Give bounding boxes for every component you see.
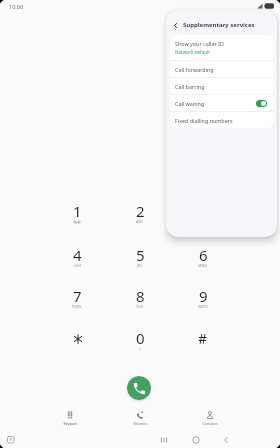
staticText: 9 (199, 286, 208, 306)
button[interactable]: 1 (57, 201, 97, 221)
button[interactable]: Supplementary services (166, 17, 277, 33)
button[interactable]: 0 (120, 328, 160, 348)
button[interactable]: 8 (120, 286, 160, 306)
staticText: Recents (133, 421, 148, 426)
staticText: Call barring (175, 83, 205, 90)
staticText: ABC (136, 219, 144, 224)
staticText: 10:00 (9, 3, 24, 10)
staticText: Keypad (63, 421, 77, 426)
staticText: 7 (73, 286, 82, 306)
staticText: TUV (136, 304, 144, 309)
button[interactable]: Call forwarding (170, 61, 274, 77)
button[interactable]: 4 (57, 245, 97, 265)
button[interactable]: Fixed dialling numbers (170, 112, 274, 128)
staticText: Call forwarding (175, 66, 214, 73)
staticText: Show your caller ID (175, 40, 224, 47)
staticText: JKL (137, 263, 143, 268)
button[interactable]: Keypad (48, 411, 92, 429)
staticText: PQRS (72, 304, 82, 309)
staticText: # (198, 329, 208, 348)
button[interactable]: Call barring (170, 78, 274, 94)
staticText: 2 (136, 201, 145, 221)
staticText: Contacts (202, 421, 218, 426)
staticText: 0 (136, 328, 145, 348)
button[interactable]: 2 (120, 201, 160, 221)
staticText: Fixed dialling numbers (175, 117, 233, 124)
staticText: 8 (136, 286, 145, 306)
button[interactable] (58, 329, 98, 349)
button[interactable]: 6 (183, 245, 223, 265)
button[interactable] (127, 376, 151, 400)
button[interactable]: 5 (120, 245, 160, 265)
staticText: GHI (74, 263, 81, 268)
staticText: + (139, 346, 142, 351)
staticText: Network default (175, 49, 210, 55)
staticText: Call waiting (175, 100, 205, 107)
staticText: 4 (73, 245, 82, 265)
button[interactable]: 7 (57, 286, 97, 306)
staticText: 1 (73, 201, 82, 221)
button[interactable]: Call waiting (170, 95, 274, 111)
staticText: WXYZ (198, 304, 209, 309)
staticText: MNO (198, 263, 208, 268)
button[interactable]: Show your caller ID (170, 35, 274, 60)
button[interactable]: # (183, 328, 223, 348)
button[interactable]: 9 (183, 286, 223, 306)
button[interactable]: Contacts (188, 411, 232, 429)
staticText: Supplementary services (183, 21, 255, 29)
staticText: 5 (136, 245, 145, 265)
button[interactable]: Recents (118, 411, 162, 429)
staticText: 6 (199, 245, 208, 265)
